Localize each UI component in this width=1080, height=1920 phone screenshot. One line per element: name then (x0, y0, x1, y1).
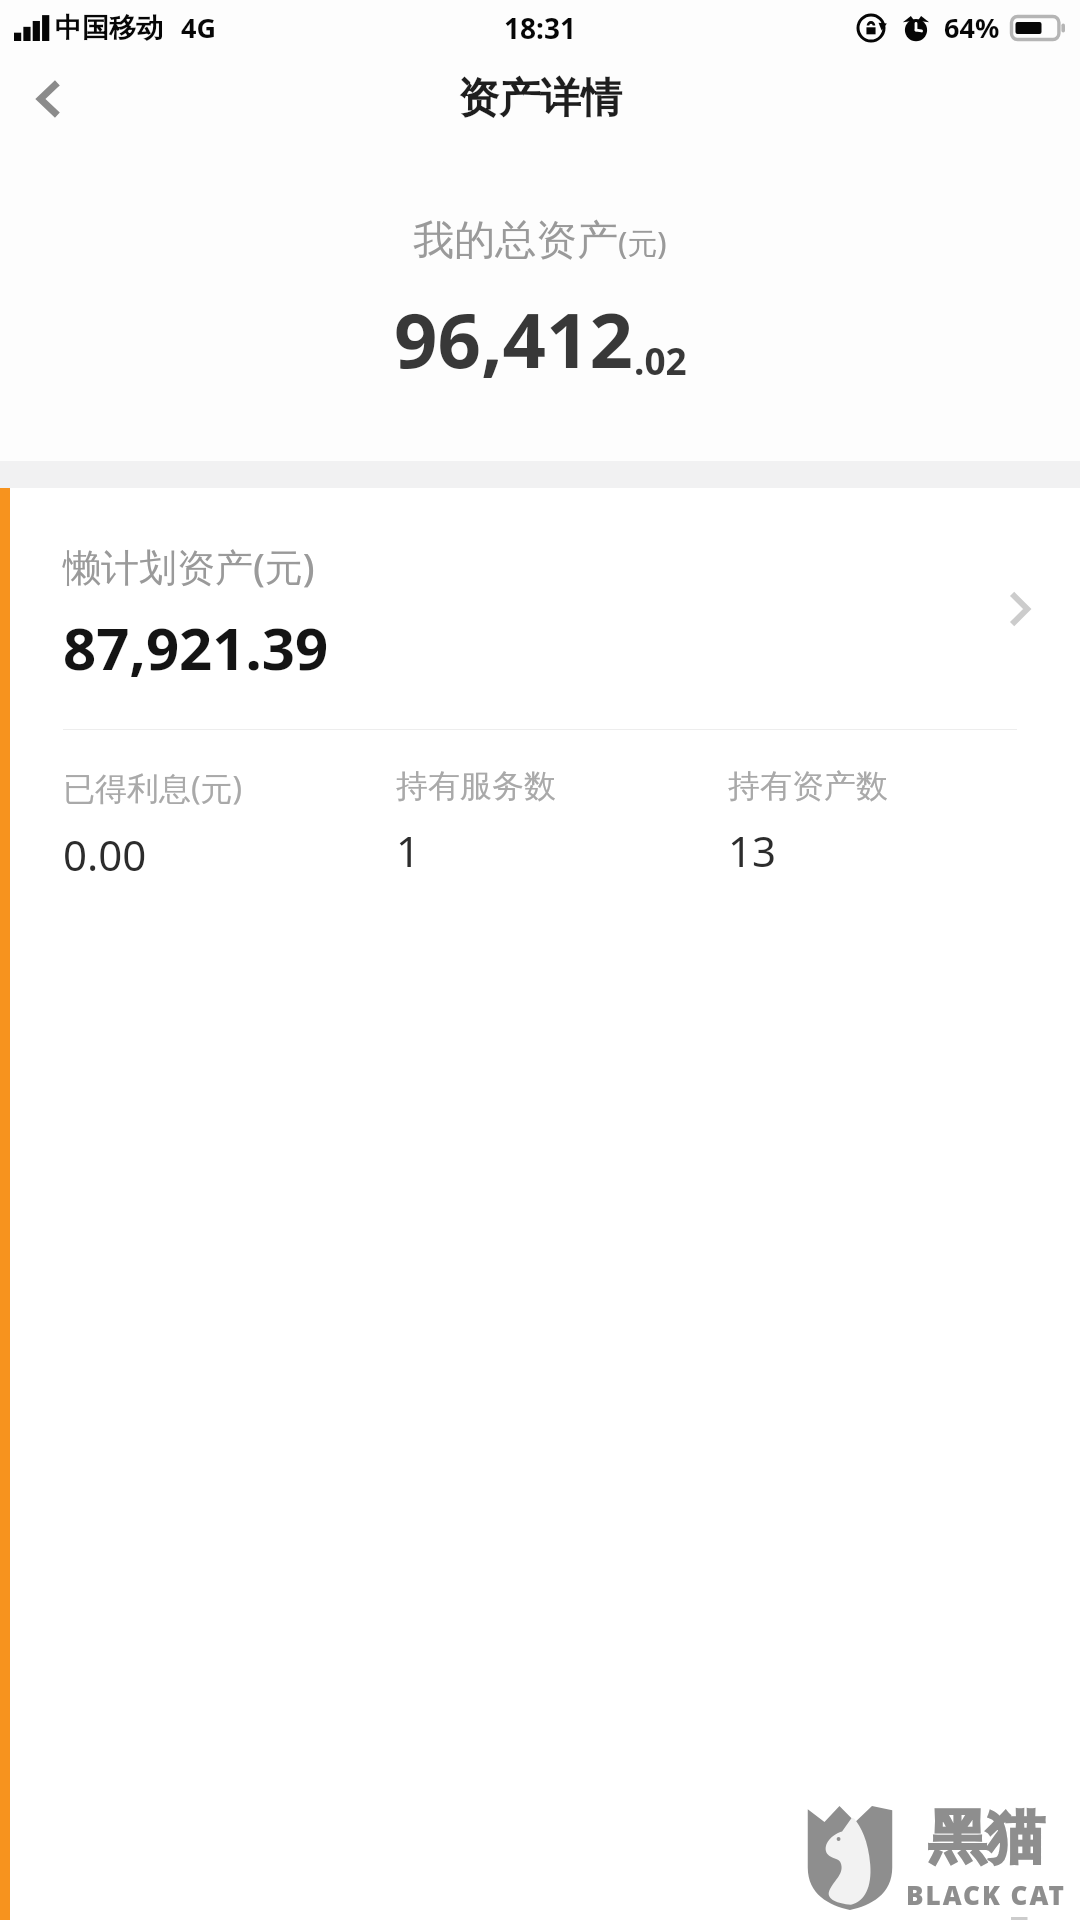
staticText: 懒计划资产(元) (63, 540, 315, 592)
staticText: 资产详情 (458, 73, 622, 125)
staticText: 96,412 (394, 287, 634, 391)
staticText: 中国移动 (55, 11, 163, 45)
staticText: 13 (728, 822, 777, 879)
staticText: 持有资产数 (728, 766, 888, 806)
staticText: 我的总资产 (413, 215, 618, 267)
staticText: 87,921.39 (63, 608, 329, 687)
staticText: 64% (944, 9, 1000, 46)
staticText: (元) (618, 222, 667, 263)
staticText: 0.00 (63, 826, 147, 883)
staticText: BLACK CAT (906, 1877, 1066, 1912)
staticText: 已得利息(元) (63, 766, 243, 810)
staticText: 1 (396, 822, 421, 879)
staticText: 黑猫 (928, 1801, 1044, 1874)
button[interactable]: 返回 (6, 57, 90, 141)
staticText: .02 (634, 335, 687, 385)
staticText: 4G (181, 9, 216, 46)
staticText: 18:31 (504, 9, 576, 47)
staticText: 持有服务数 (396, 766, 556, 806)
button[interactable]: 懒计划资产(元) (0, 488, 1080, 1920)
